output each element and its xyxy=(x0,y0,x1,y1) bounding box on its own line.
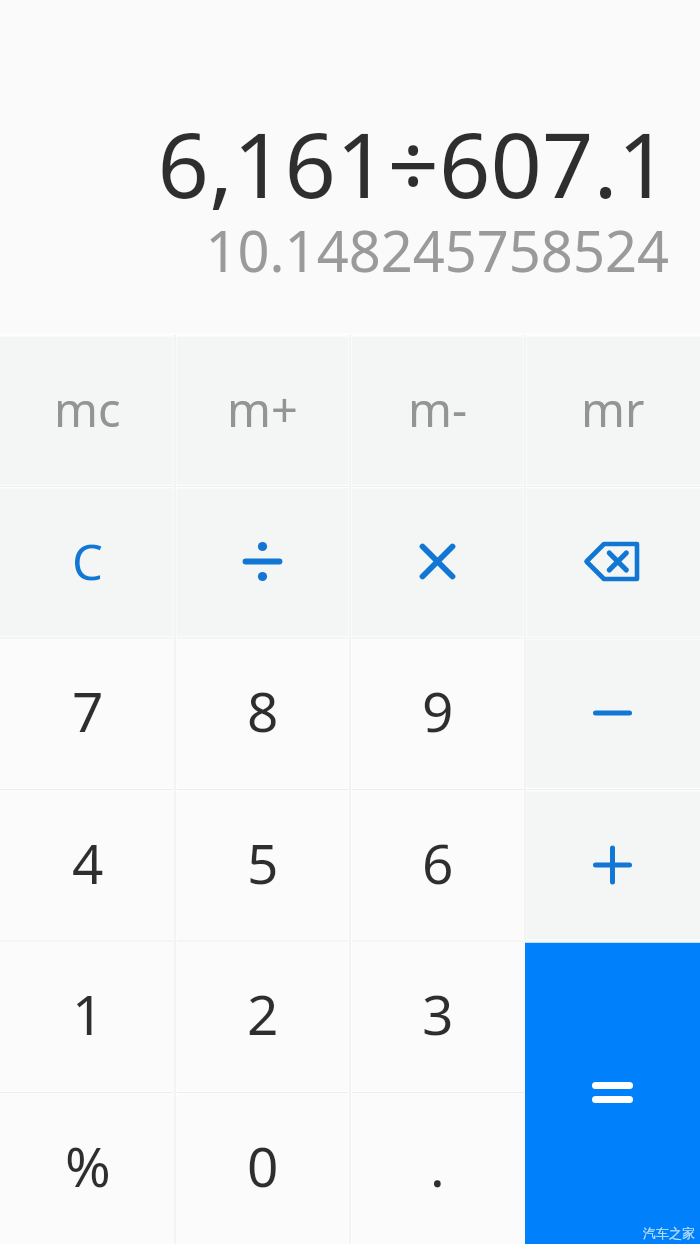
staticText: m- xyxy=(408,377,468,441)
staticText: 7 xyxy=(72,673,104,748)
staticText: 10.148245758524 xyxy=(205,212,669,288)
button[interactable]: Equals xyxy=(525,941,700,1244)
button[interactable]: C xyxy=(0,486,175,637)
staticText: 8 xyxy=(247,673,279,748)
staticText: % xyxy=(65,1128,111,1203)
staticText: 0 xyxy=(247,1128,279,1203)
button[interactable]: Minus xyxy=(525,637,700,789)
button[interactable]: 5 xyxy=(175,789,350,941)
staticText: mr xyxy=(581,377,645,441)
staticText: 汽车之家 xyxy=(643,1225,695,1241)
button[interactable]: 0 xyxy=(175,1092,350,1244)
staticText: 2 xyxy=(247,976,279,1051)
staticText: . xyxy=(430,1128,445,1203)
button[interactable]: Multiply xyxy=(350,486,525,637)
button[interactable]: Backspace xyxy=(525,486,700,637)
button[interactable]: m- xyxy=(350,335,525,486)
button[interactable]: mc xyxy=(0,335,175,486)
button[interactable]: 2 xyxy=(175,941,350,1092)
button[interactable]: 9 xyxy=(350,637,525,789)
staticText: 9 xyxy=(422,673,454,748)
button[interactable]: 6 xyxy=(350,789,525,941)
staticText: mc xyxy=(54,377,121,441)
staticText: 3 xyxy=(422,976,454,1051)
button[interactable]: 3 xyxy=(350,941,525,1092)
button[interactable]: mr xyxy=(525,335,700,486)
button[interactable]: Divide xyxy=(175,486,350,637)
button[interactable]: 7 xyxy=(0,637,175,789)
button[interactable]: 8 xyxy=(175,637,350,789)
staticText: 4 xyxy=(72,825,104,900)
button[interactable]: % xyxy=(0,1092,175,1244)
staticText: C xyxy=(72,528,103,595)
staticText: 6,161÷607.1 xyxy=(157,102,669,225)
staticText: 5 xyxy=(247,825,279,900)
button[interactable]: 1 xyxy=(0,941,175,1092)
button[interactable]: 4 xyxy=(0,789,175,941)
button[interactable]: Plus xyxy=(525,789,700,941)
button[interactable]: . xyxy=(350,1092,525,1244)
staticText: m+ xyxy=(227,377,298,441)
staticText: 6 xyxy=(422,825,454,900)
button[interactable]: m+ xyxy=(175,335,350,486)
staticText: 1 xyxy=(72,976,104,1051)
